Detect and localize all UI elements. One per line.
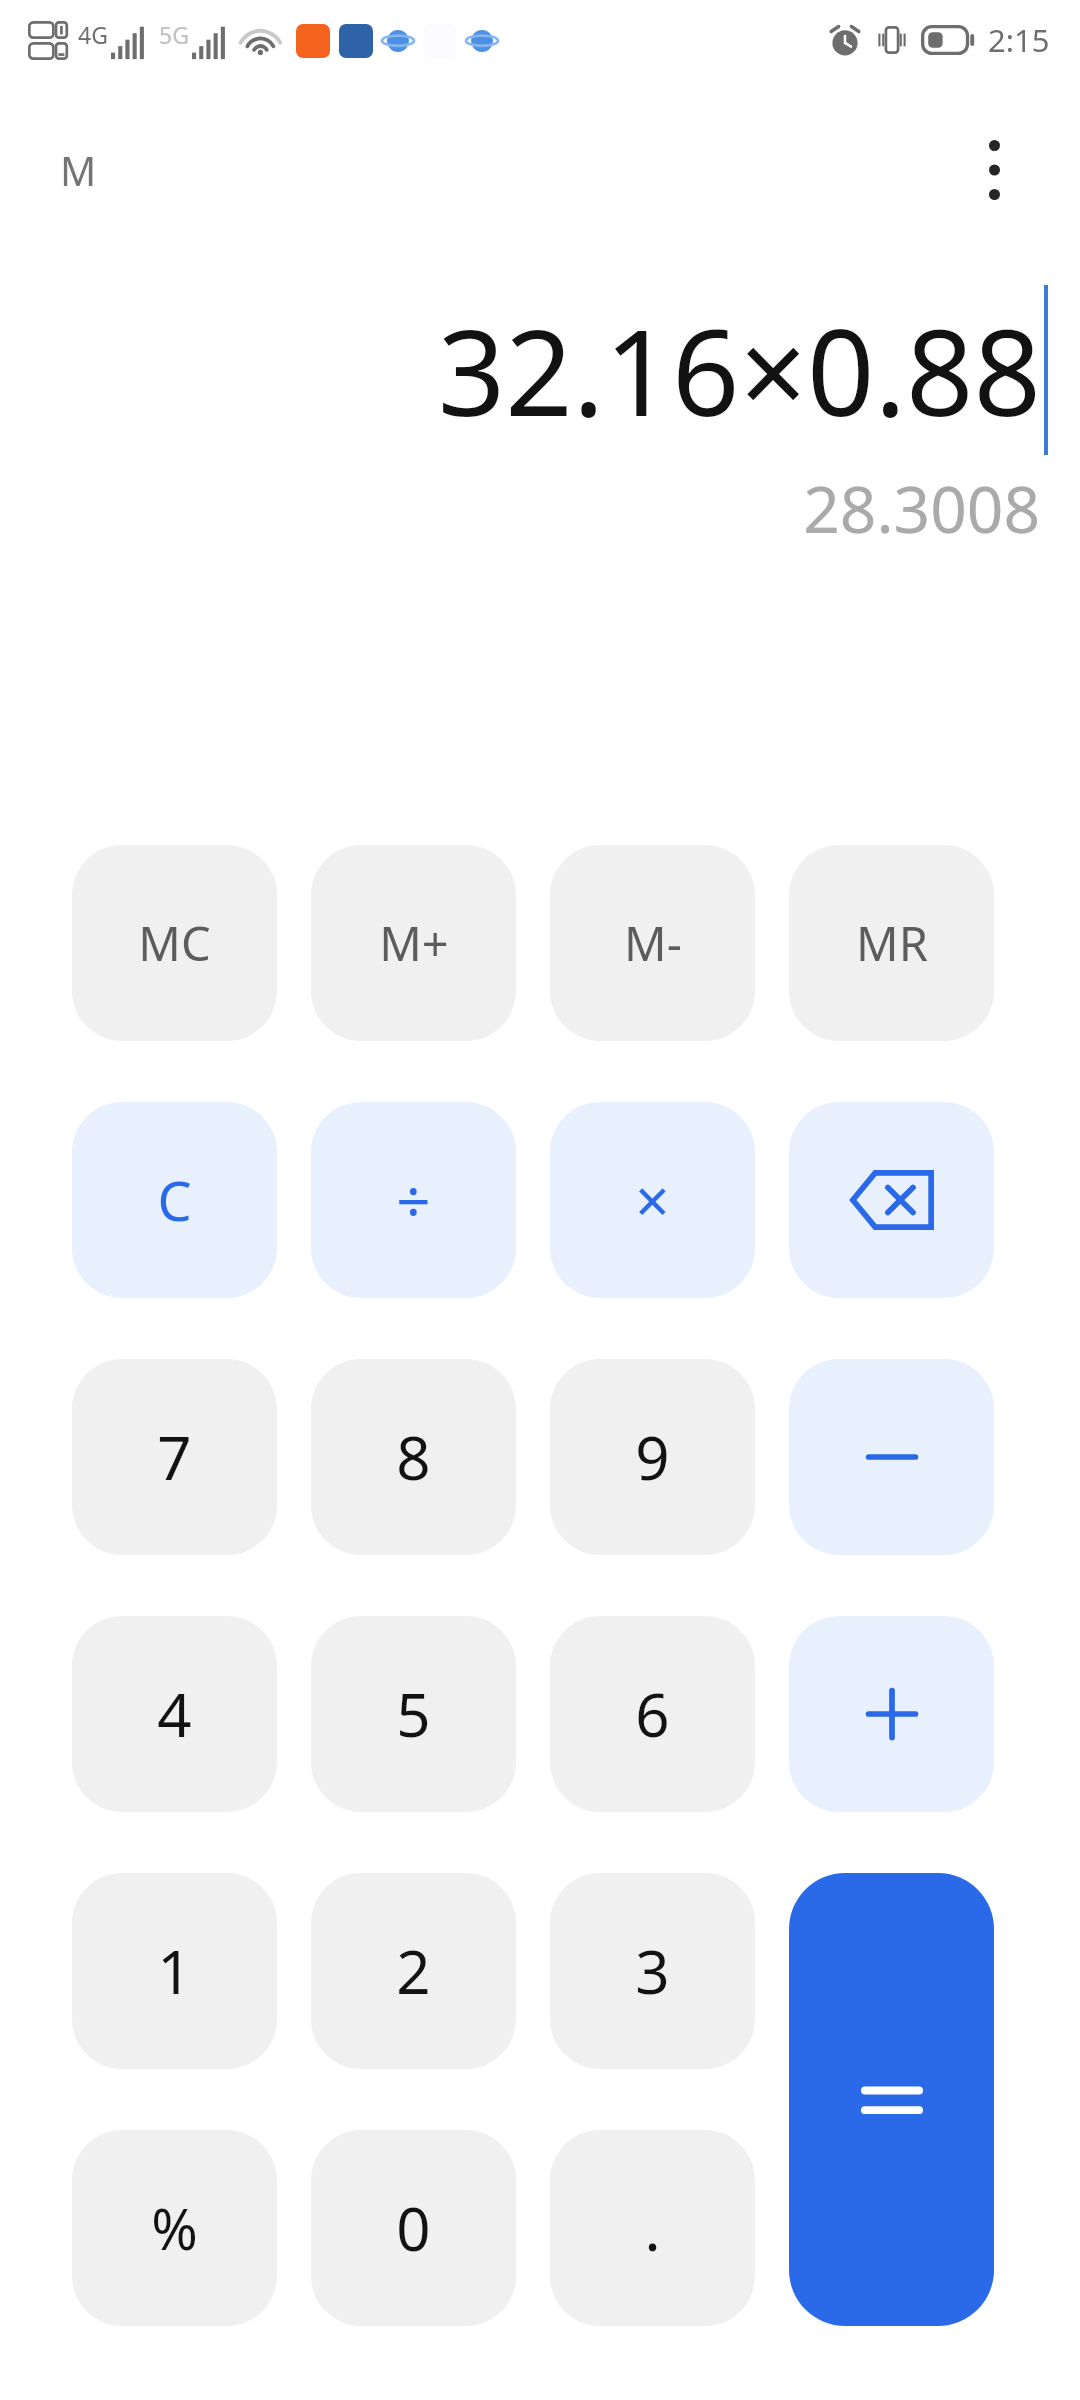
button[interactable]: 0 bbox=[311, 2130, 516, 2326]
button[interactable]: C bbox=[72, 1102, 277, 1298]
staticText: 2 bbox=[396, 1930, 431, 2012]
button[interactable]: 2 bbox=[311, 1873, 516, 2069]
staticText: 28.3008 bbox=[803, 465, 1040, 552]
staticText: 5 bbox=[396, 1673, 431, 1755]
button[interactable]: × bbox=[550, 1102, 755, 1298]
staticText: M+ bbox=[379, 911, 449, 975]
staticText: 32.16×0.88 bbox=[437, 290, 1041, 451]
staticText: 4 bbox=[157, 1673, 192, 1755]
staticText: M bbox=[60, 143, 97, 197]
button[interactable]: More options bbox=[946, 122, 1042, 218]
staticText: % bbox=[151, 2190, 198, 2266]
staticText: 5G bbox=[159, 19, 189, 50]
button[interactable]: 3 bbox=[550, 1873, 755, 2069]
button[interactable]: 5 bbox=[311, 1616, 516, 1812]
button[interactable]: M- bbox=[550, 845, 755, 1041]
staticText: 3 bbox=[635, 1930, 670, 2012]
button[interactable]: Minus bbox=[789, 1359, 994, 1555]
staticText: 0 bbox=[396, 2187, 431, 2269]
button[interactable]: MR bbox=[789, 845, 994, 1041]
staticText: 9 bbox=[635, 1416, 670, 1498]
button[interactable]: ÷ bbox=[311, 1102, 516, 1298]
staticText: C bbox=[157, 1163, 192, 1237]
button[interactable]: . bbox=[550, 2130, 755, 2326]
staticText: . bbox=[644, 2187, 661, 2269]
staticText: 2:15 bbox=[988, 19, 1050, 61]
staticText: 6 bbox=[635, 1673, 670, 1755]
staticText: MR bbox=[856, 911, 928, 975]
staticText: 8 bbox=[396, 1416, 431, 1498]
staticText: 4G bbox=[78, 19, 108, 50]
button[interactable]: 7 bbox=[72, 1359, 277, 1555]
button[interactable]: M bbox=[48, 135, 109, 205]
button[interactable]: MC bbox=[72, 845, 277, 1041]
staticText: MC bbox=[138, 911, 211, 975]
button[interactable]: Equals bbox=[789, 1873, 994, 2326]
button[interactable]: 4 bbox=[72, 1616, 277, 1812]
button[interactable]: 6 bbox=[550, 1616, 755, 1812]
staticText: × bbox=[635, 1159, 670, 1241]
staticText: 7 bbox=[157, 1416, 192, 1498]
staticText: M- bbox=[624, 911, 682, 975]
button[interactable]: 1 bbox=[72, 1873, 277, 2069]
staticText: 1 bbox=[157, 1930, 192, 2012]
staticText: ÷ bbox=[396, 1159, 431, 1241]
button[interactable]: M+ bbox=[311, 845, 516, 1041]
button[interactable]: 9 bbox=[550, 1359, 755, 1555]
button[interactable]: 8 bbox=[311, 1359, 516, 1555]
button[interactable]: Backspace bbox=[789, 1102, 994, 1298]
button[interactable]: % bbox=[72, 2130, 277, 2326]
button[interactable]: Plus bbox=[789, 1616, 994, 1812]
